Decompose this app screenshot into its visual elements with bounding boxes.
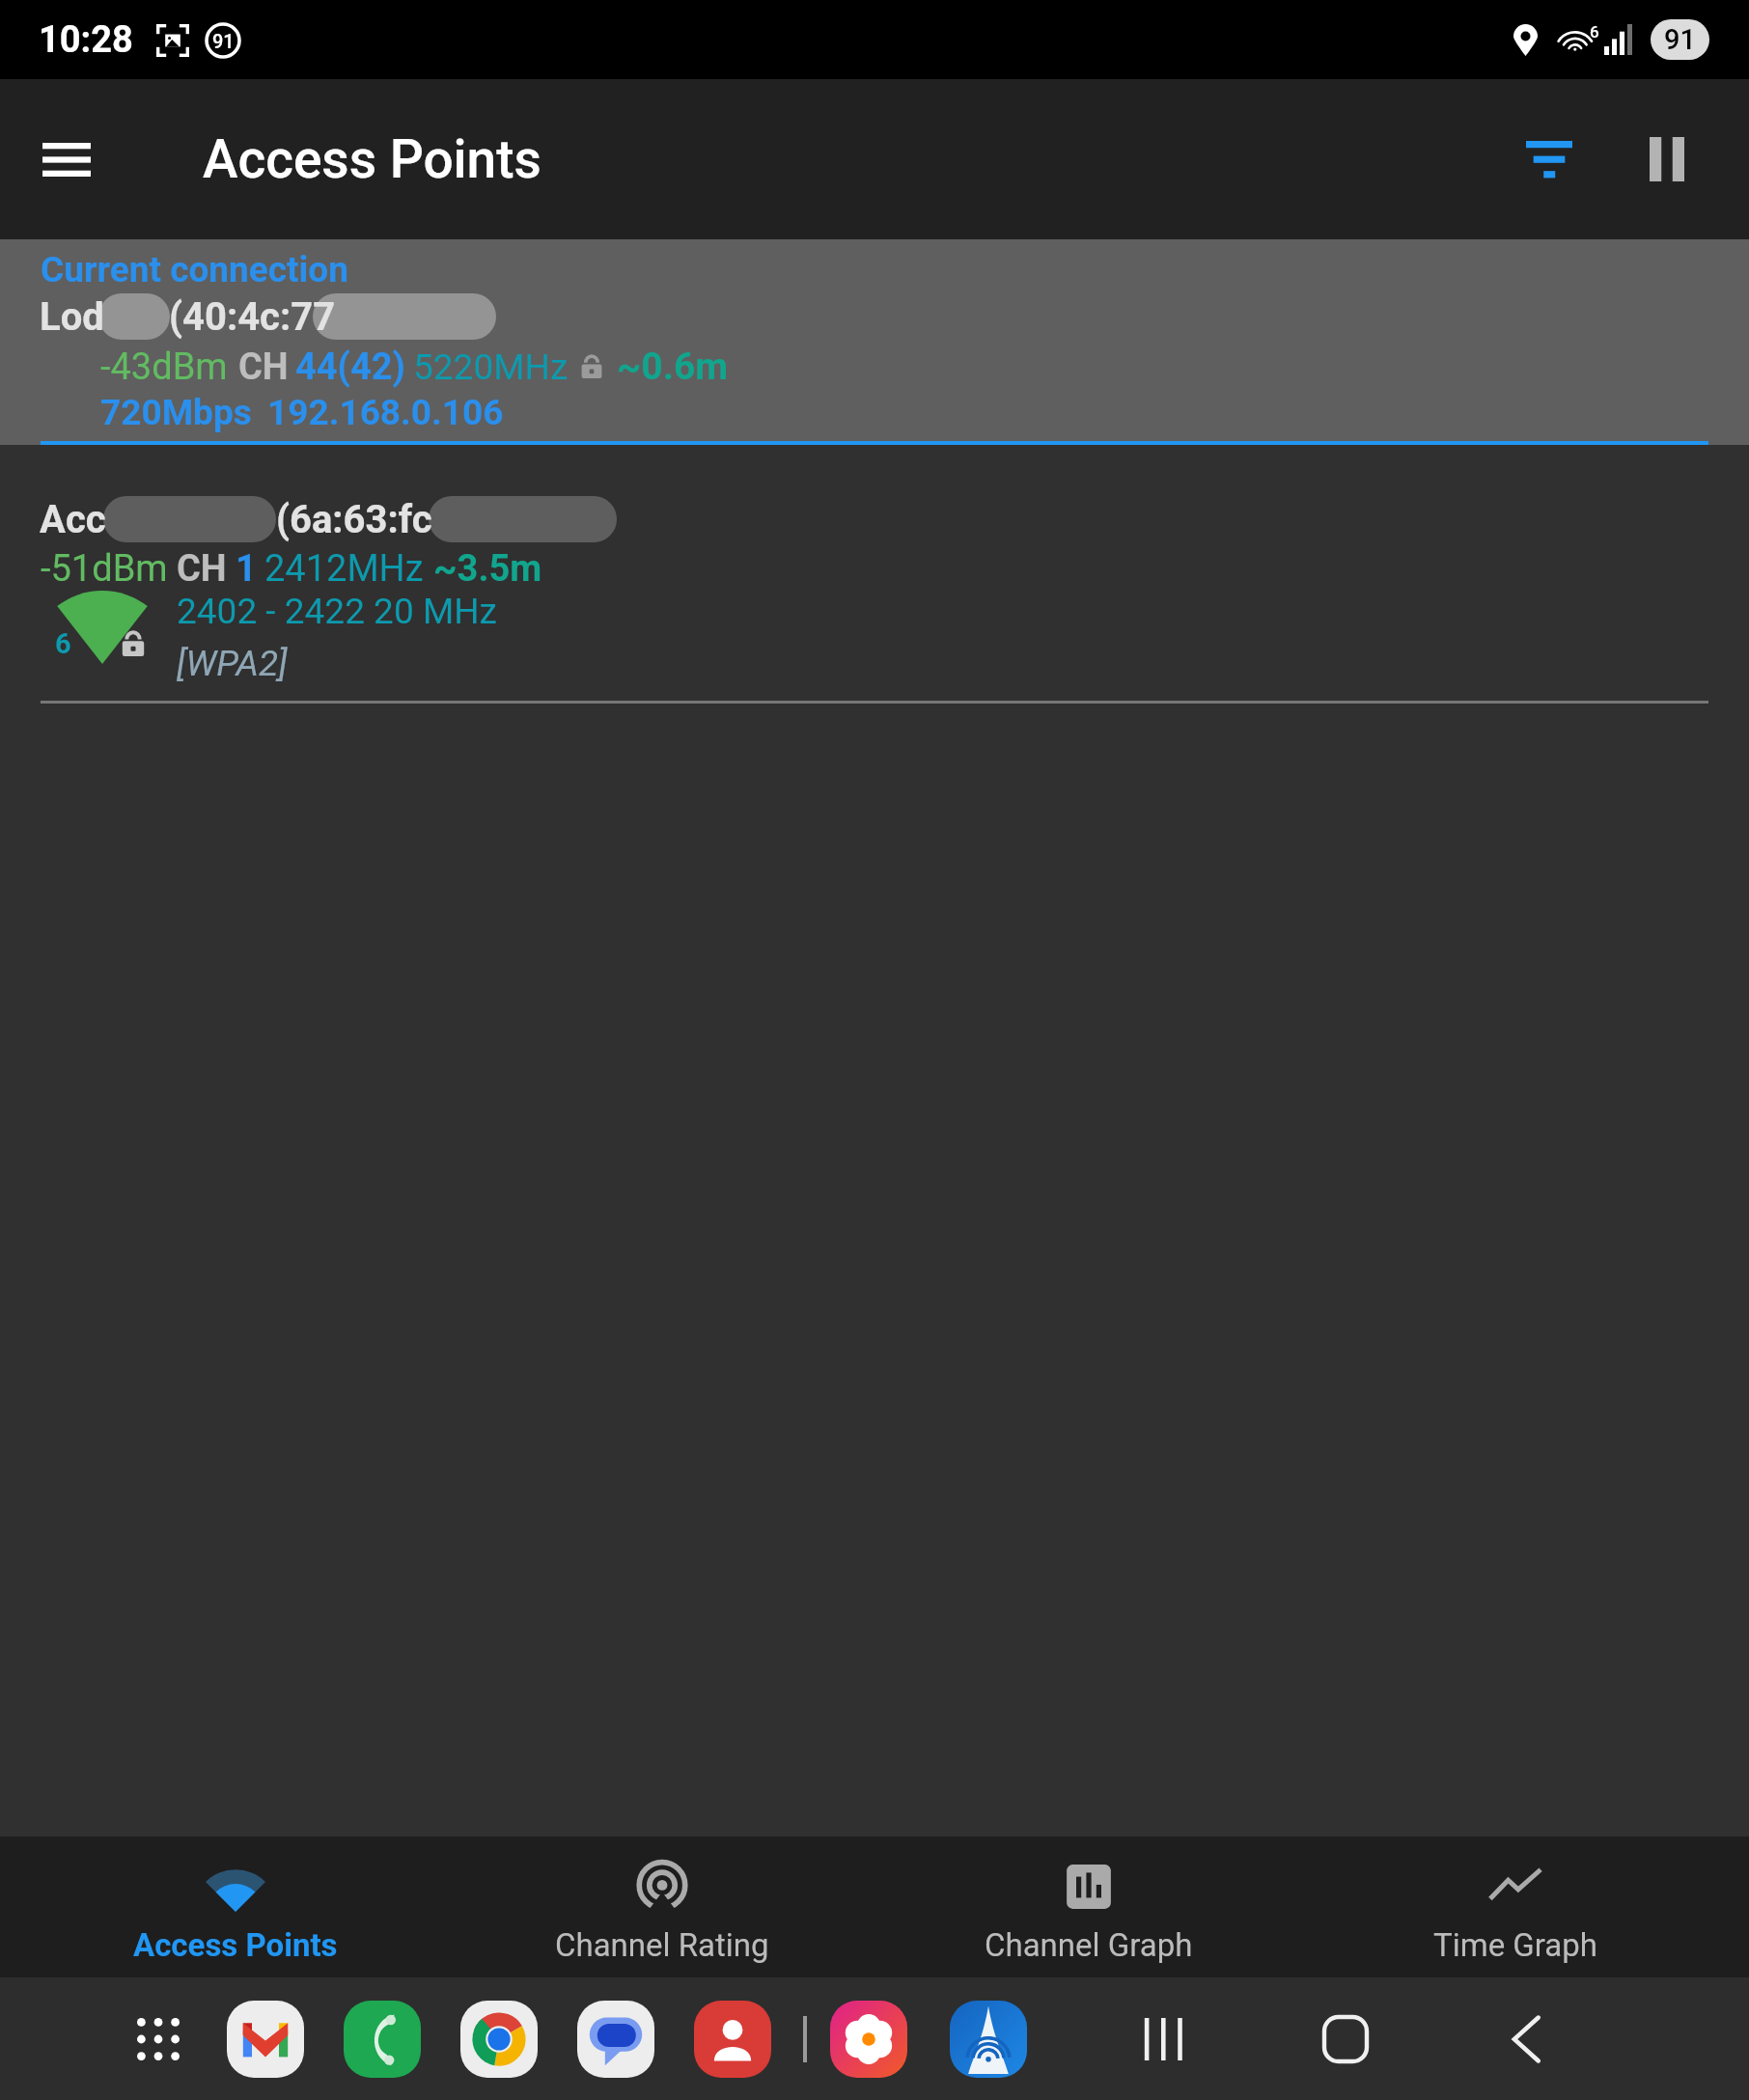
staticText: 1 <box>236 547 257 591</box>
button[interactable]: Pause scanning <box>1614 106 1720 212</box>
staticText: Time Graph <box>1433 1926 1598 1964</box>
button[interactable]: Time Graph <box>1302 1837 1729 1977</box>
staticText: 44(42) <box>295 345 405 389</box>
staticText: 91 <box>1664 23 1696 56</box>
staticText: CH <box>177 547 227 591</box>
button[interactable]: Contacts <box>694 2001 771 2078</box>
staticText: 10:28 <box>39 18 133 62</box>
staticText: Access Points <box>203 128 541 190</box>
staticText: 5220MHz <box>413 346 569 388</box>
staticText: Acc <box>40 497 106 542</box>
button[interactable]: Messages <box>577 2001 654 2078</box>
button[interactable]: WiFi Analyzer <box>950 2001 1027 2078</box>
button[interactable]: Acc <box>0 445 1749 704</box>
button[interactable]: Back <box>1483 1996 1569 2083</box>
button[interactable]: Access Points <box>21 1837 449 1977</box>
staticText: Lod <box>40 294 104 340</box>
button[interactable]: All apps <box>131 2012 185 2066</box>
staticText: 720Mbps <box>100 392 252 433</box>
staticText: ~3.5m <box>433 547 542 591</box>
button[interactable]: Filter <box>1496 106 1602 212</box>
staticText: 6 <box>55 627 71 660</box>
button[interactable]: Chrome <box>460 2001 538 2078</box>
staticText: Channel Rating <box>555 1926 769 1964</box>
staticText: 6 <box>1590 22 1599 41</box>
button[interactable]: Gallery <box>830 2001 907 2078</box>
staticText: 192.168.0.106 <box>267 392 504 433</box>
staticText: [WPA2] <box>177 643 288 684</box>
staticText: 2412MHz <box>264 547 424 591</box>
button[interactable]: Home <box>1302 1996 1389 2083</box>
staticText: Channel Graph <box>985 1926 1193 1964</box>
staticText: Access Points <box>133 1926 338 1964</box>
button[interactable]: Recent apps <box>1120 1996 1207 2083</box>
staticText: Current connection <box>41 249 348 290</box>
staticText: -51dBm <box>41 547 168 591</box>
button[interactable]: Channel Rating <box>449 1837 875 1977</box>
button[interactable]: Gmail <box>227 2001 304 2078</box>
staticText: 2402 - 2422 20 MHz <box>177 591 497 632</box>
button[interactable]: Phone <box>344 2001 421 2078</box>
staticText: 91 <box>212 30 235 52</box>
staticText: (6a:63:fc <box>276 497 432 542</box>
staticText: CH <box>238 345 289 389</box>
button[interactable]: Open navigation menu <box>23 116 110 203</box>
staticText: (40:4c:77 <box>169 294 336 340</box>
button[interactable]: Channel Graph <box>875 1837 1302 1977</box>
button[interactable]: Current connection <box>0 239 1749 445</box>
staticText: -43dBm <box>100 345 228 389</box>
staticText: ~0.6m <box>617 345 729 389</box>
